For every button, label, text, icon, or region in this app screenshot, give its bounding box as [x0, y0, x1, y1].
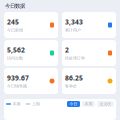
staticText: 86.25 — [65, 73, 83, 82]
staticText: 939.67 — [7, 73, 29, 82]
staticText: 今日数据 — [5, 3, 25, 9]
staticText: 今日新增 — [7, 28, 23, 33]
staticText: 本周 — [84, 101, 92, 106]
staticText: 245 — [7, 17, 19, 26]
button[interactable]: 本周 — [82, 101, 95, 107]
button[interactable]: 近30天 — [97, 101, 114, 107]
button[interactable]: 5,562 — [4, 40, 58, 66]
staticText: 5,562 — [7, 45, 25, 54]
staticText: 2 — [65, 45, 69, 54]
staticText: 3,343 — [65, 17, 83, 26]
button[interactable]: 939.67 — [4, 68, 58, 94]
staticText: 近30天 — [99, 101, 111, 107]
button[interactable]: 3,343 — [62, 12, 116, 38]
staticText: 今日销售额 — [7, 84, 27, 89]
staticText: 访问次数 — [7, 56, 23, 61]
staticText: 今日 — [69, 101, 77, 106]
button[interactable]: 今日 — [67, 101, 80, 107]
button[interactable]: 245 — [4, 12, 58, 38]
button[interactable]: 86.25 — [62, 68, 116, 94]
staticText: 客单价 — [65, 84, 77, 89]
staticText: 本期 — [12, 101, 20, 106]
staticText: 上期 — [32, 101, 40, 106]
button[interactable]: 2 — [62, 40, 116, 66]
staticText: 累计用户 — [65, 28, 81, 33]
staticText: 待处理订单 — [65, 56, 85, 61]
